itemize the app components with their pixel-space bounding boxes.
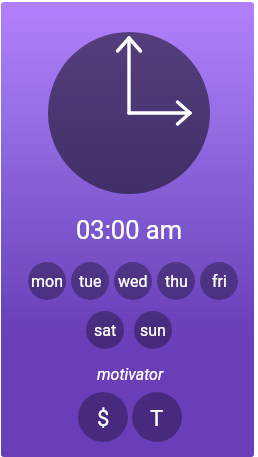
staticText: wed: [118, 272, 148, 291]
button[interactable]: sun: [134, 311, 172, 349]
staticText: mon: [31, 272, 63, 291]
staticText: sun: [140, 321, 166, 340]
staticText: fri: [212, 272, 227, 291]
button[interactable]: 03:00 am: [76, 215, 183, 245]
staticText: T: [150, 406, 164, 432]
button[interactable]: thu: [157, 262, 195, 300]
staticText: sat: [94, 321, 117, 340]
button[interactable]: Money motivator: [78, 392, 128, 442]
staticText: motivator: [97, 365, 164, 384]
button[interactable]: sat: [86, 311, 124, 349]
button[interactable]: fri: [200, 262, 238, 300]
button[interactable]: Text motivator: [132, 392, 182, 442]
button[interactable]: tue: [71, 262, 109, 300]
staticText: thu: [165, 272, 188, 291]
staticText: 03:00 am: [76, 215, 183, 245]
staticText: tue: [79, 272, 102, 291]
button[interactable]: wed: [114, 262, 152, 300]
staticText: $: [97, 406, 110, 432]
button[interactable]: Set alarm time: [48, 32, 210, 194]
button[interactable]: mon: [28, 262, 66, 300]
